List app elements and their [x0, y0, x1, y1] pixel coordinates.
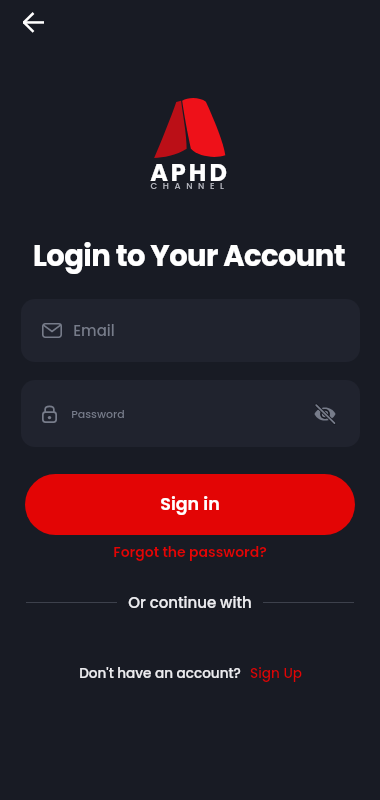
staticText: Don't have an account?	[79, 664, 241, 683]
staticText: Password	[71, 406, 125, 421]
staticText: Sign in	[160, 492, 220, 517]
staticText: Forgot the password?	[113, 542, 267, 562]
button[interactable]: Password	[21, 380, 360, 447]
button[interactable]: Forgot the password?	[105, 537, 275, 567]
button[interactable]: Sign in	[25, 474, 355, 535]
staticText: Email	[73, 320, 115, 341]
button[interactable]: Show password	[307, 396, 343, 432]
staticText: CHANNEL	[150, 180, 230, 192]
staticText: Login to Your Account	[33, 236, 345, 277]
button[interactable]: Sign Up	[250, 664, 302, 683]
button[interactable]: Email	[21, 299, 360, 362]
staticText: Or continue with	[128, 592, 252, 613]
staticText: APHD	[150, 156, 230, 190]
button[interactable]: Back	[13, 3, 53, 43]
staticText: Sign Up	[250, 664, 302, 683]
